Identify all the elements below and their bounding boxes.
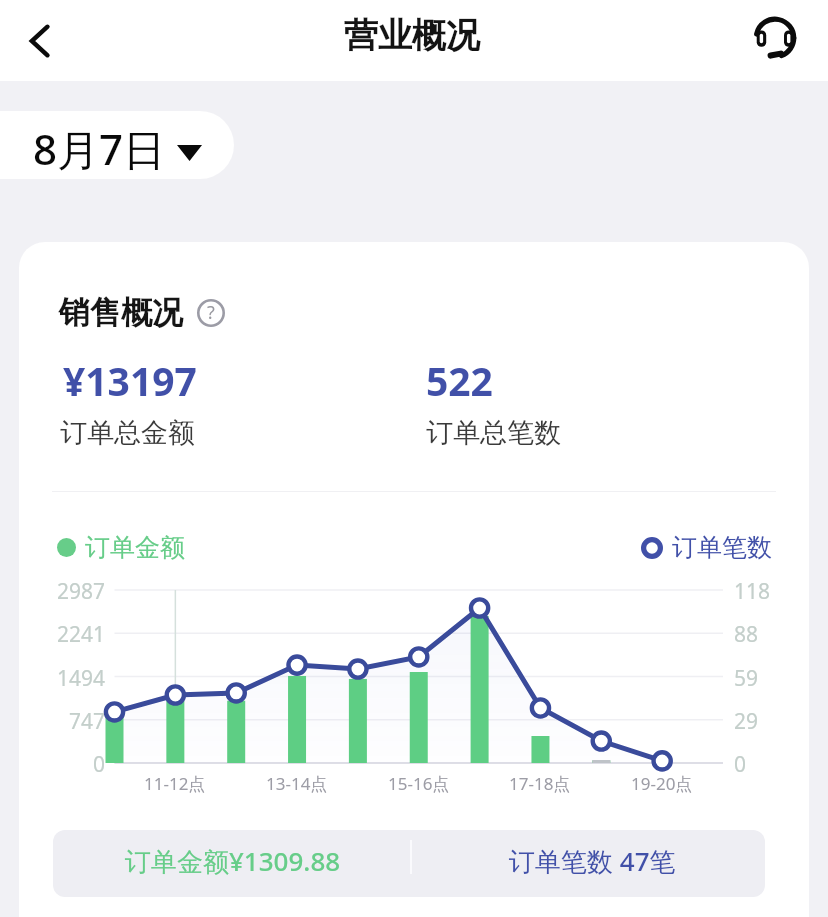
staticText: 0 (93, 750, 106, 779)
staticText: 2987 (57, 577, 106, 606)
button[interactable]: 订单金额¥1309.88 (53, 830, 409, 897)
staticText: 747 (69, 707, 106, 736)
staticText: 13-14点 (266, 772, 328, 795)
staticText: 0 (734, 750, 747, 779)
staticText: 1494 (57, 664, 106, 693)
button[interactable]: Back (8, 9, 72, 73)
staticText: 订单笔数 (672, 532, 772, 563)
staticText: 118 (734, 577, 771, 606)
staticText: 2241 (57, 620, 106, 649)
staticText: 订单笔数 47笔 (509, 843, 676, 879)
staticText: 59 (734, 664, 759, 693)
staticText: 销售概况 (59, 293, 183, 332)
staticText: ¥13197 (63, 354, 197, 407)
staticText: 订单总笔数 (426, 416, 561, 450)
staticText: 订单金额 (85, 532, 185, 563)
staticText: 19-20点 (631, 772, 693, 795)
staticText: 88 (734, 620, 759, 649)
staticText: 29 (734, 707, 759, 736)
button[interactable]: Customer service (753, 16, 797, 60)
staticText: 17-18点 (509, 772, 571, 795)
button[interactable]: 订单笔数 47笔 (409, 830, 765, 897)
staticText: 8月7日 (33, 120, 166, 177)
staticText: 15-16点 (388, 772, 450, 795)
staticText: ? (207, 300, 215, 325)
staticText: 营业概况 (344, 14, 480, 57)
staticText: 订单金额¥1309.88 (125, 843, 341, 879)
staticText: 522 (426, 354, 493, 407)
button[interactable]: 8月7日 (0, 111, 234, 179)
staticText: 订单总金额 (60, 416, 195, 450)
button[interactable]: Help (197, 299, 225, 327)
staticText: 11-12点 (144, 772, 206, 795)
